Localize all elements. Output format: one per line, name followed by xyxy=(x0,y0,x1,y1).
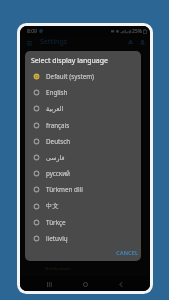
staticText: lietuvių xyxy=(46,234,68,243)
staticText: Settings xyxy=(40,37,68,47)
button[interactable]: Back xyxy=(114,277,128,291)
button[interactable]: فارسی xyxy=(25,149,141,165)
button[interactable]: Translate xyxy=(125,37,135,47)
staticText: Select display language xyxy=(31,56,109,66)
button[interactable]: English xyxy=(25,84,141,100)
staticText: 中文 xyxy=(46,202,59,210)
button[interactable]: Deutsch xyxy=(25,133,141,149)
staticText: 25% xyxy=(132,28,142,35)
staticText: français xyxy=(46,121,70,130)
staticText: English xyxy=(46,88,68,97)
staticText: Türkmen dili xyxy=(46,185,83,194)
staticText: русский xyxy=(46,169,70,178)
button[interactable]: lietuvių xyxy=(25,230,141,246)
button[interactable]: русский xyxy=(25,165,141,181)
button[interactable]: 中文 xyxy=(25,198,141,214)
staticText: فارسی xyxy=(46,154,65,161)
button[interactable]: Account xyxy=(137,37,147,47)
staticText: Türkçe xyxy=(46,218,66,227)
button[interactable]: français xyxy=(25,117,141,133)
button[interactable]: CANCEL xyxy=(113,247,141,259)
staticText: Deutsch xyxy=(46,137,71,146)
staticText: Notifications xyxy=(45,265,71,271)
staticText: Default (system) xyxy=(46,72,95,81)
button[interactable]: Home xyxy=(78,277,92,291)
staticText: CANCEL xyxy=(116,249,138,257)
staticText: العربية xyxy=(46,105,64,112)
button[interactable]: Default (system) xyxy=(25,68,141,84)
button[interactable]: Navigation menu xyxy=(24,37,35,48)
button[interactable]: Recent apps xyxy=(42,277,56,291)
button[interactable]: العربية xyxy=(25,100,141,116)
button[interactable]: Türkmen dili xyxy=(25,181,141,197)
staticText: 8:09 xyxy=(27,28,37,35)
button[interactable]: Türkçe xyxy=(25,214,141,230)
